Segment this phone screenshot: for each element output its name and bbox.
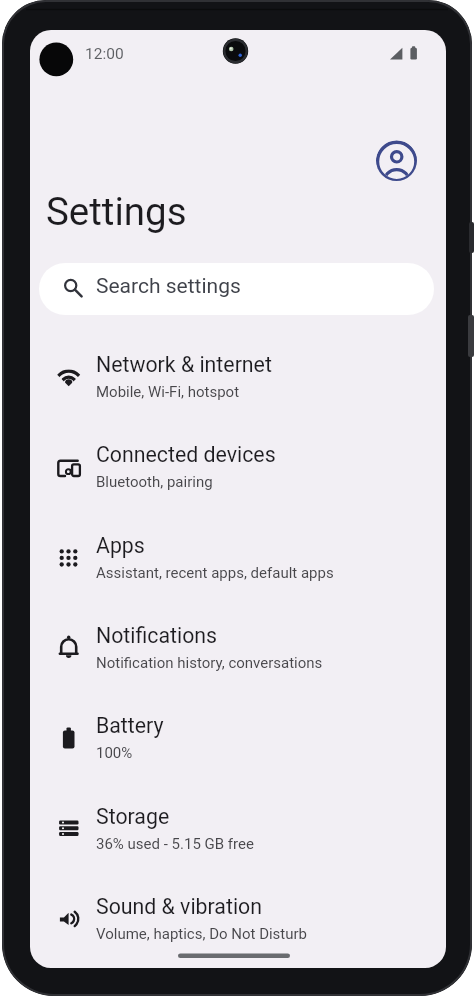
staticText: Connected devices [96, 442, 276, 467]
button[interactable] [376, 140, 417, 181]
staticText: 36% used - 5.15 GB free [96, 835, 254, 853]
button[interactable]: Network & internet [30, 332, 446, 422]
button[interactable]: Battery [30, 693, 446, 783]
button[interactable]: Search settings [39, 263, 434, 315]
staticText: Search settings [96, 274, 241, 299]
staticText: Notifications [96, 623, 218, 648]
staticText: Battery [96, 713, 164, 738]
button[interactable]: Apps [30, 513, 446, 603]
staticText: Volume, haptics, Do Not Disturb [96, 925, 308, 943]
staticText: 100% [96, 744, 133, 762]
staticText: Mobile, Wi-Fi, hotspot [96, 383, 240, 401]
staticText: Storage [96, 804, 170, 829]
staticText: Settings [46, 189, 187, 234]
staticText: Sound & vibration [96, 894, 263, 919]
button[interactable]: Connected devices [30, 422, 446, 512]
staticText: Bluetooth, pairing [96, 473, 213, 491]
staticText: Network & internet [96, 352, 272, 377]
staticText: Apps [96, 533, 145, 558]
staticText: 12:00 [85, 45, 124, 63]
button[interactable]: Storage [30, 784, 446, 874]
staticText: Assistant, recent apps, default apps [96, 564, 334, 582]
button[interactable]: Sound & vibration [30, 874, 446, 964]
button[interactable]: Notifications [30, 603, 446, 693]
staticText: Notification history, conversations [96, 654, 323, 672]
